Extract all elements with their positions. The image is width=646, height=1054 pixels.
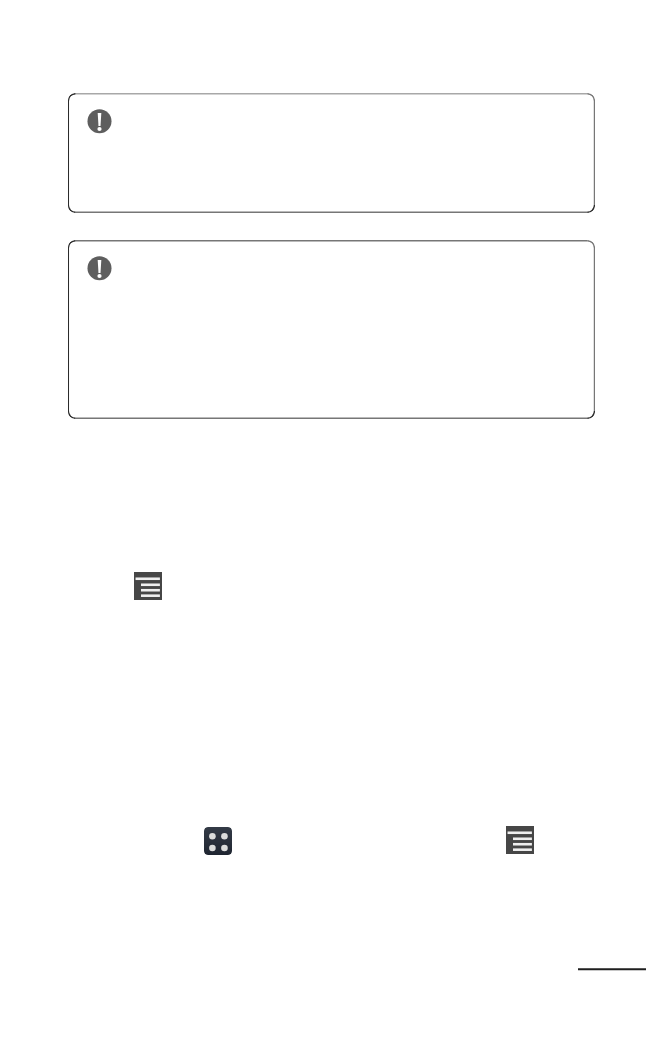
button[interactable]: Menu key [134, 572, 162, 600]
button[interactable]: Menu key [506, 826, 534, 854]
button[interactable]: Caution [68, 240, 595, 419]
button[interactable]: Note [68, 93, 595, 213]
button[interactable]: Apps key [204, 827, 232, 855]
